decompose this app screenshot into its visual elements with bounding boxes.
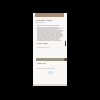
staticText: Next up xyxy=(37,62,46,65)
button[interactable] xyxy=(36,58,67,61)
staticText: by author xyxy=(36,21,64,24)
staticText: supporting copy here xyxy=(37,67,56,69)
button[interactable]: Continue xyxy=(48,71,53,74)
staticText: Chapter head xyxy=(36,18,64,21)
staticText: Lorem ipsum dolor sit amet, consectetur … xyxy=(37,25,64,43)
staticText: secondary note xyxy=(37,46,50,48)
staticText: Short label xyxy=(37,42,48,45)
